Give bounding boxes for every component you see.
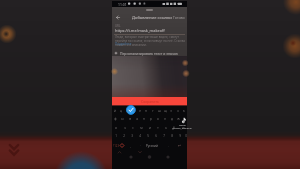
button[interactable]: ц xyxy=(118,108,124,113)
staticText: г xyxy=(152,109,154,113)
button[interactable]: т xyxy=(154,125,162,130)
staticText: 9 xyxy=(179,134,181,138)
staticText: 1 xyxy=(115,134,117,138)
staticText: ф xyxy=(114,117,117,121)
button[interactable]: я xyxy=(112,125,120,130)
button[interactable]: в xyxy=(126,116,133,121)
staticText: п xyxy=(143,117,145,121)
staticText: 8 xyxy=(171,134,173,138)
button[interactable]: ф xyxy=(112,116,119,121)
button[interactable]: 9 xyxy=(176,133,184,138)
button[interactable]: х xyxy=(175,108,181,113)
staticText: и xyxy=(149,126,151,130)
staticText: е xyxy=(139,109,141,113)
button[interactable]: п xyxy=(140,116,147,121)
staticText: у xyxy=(127,109,129,113)
button[interactable]: Готово xyxy=(172,14,186,20)
staticText: й xyxy=(114,109,116,113)
staticText: ш xyxy=(158,109,161,113)
button[interactable]: 6 xyxy=(152,133,160,138)
button[interactable]: у xyxy=(125,108,131,113)
staticText: Подробнее xyxy=(115,42,132,46)
button[interactable]: о xyxy=(154,116,161,121)
staticText: https://t.me/mask_makeoff xyxy=(115,28,165,33)
staticText: Готово xyxy=(173,15,185,20)
button[interactable]: ы xyxy=(119,116,126,121)
staticText: Добавление ссылки xyxy=(132,15,172,21)
button[interactable]: 8 xyxy=(168,133,176,138)
button[interactable]: к xyxy=(131,108,137,113)
staticText: ?123 xyxy=(113,144,120,148)
button[interactable]: м xyxy=(137,125,145,130)
staticText: 4 xyxy=(139,134,141,138)
staticText: щ xyxy=(164,109,167,113)
staticText: ы xyxy=(121,117,124,121)
button[interactable]: з xyxy=(168,108,174,113)
staticText: л xyxy=(164,117,166,121)
button[interactable]: э xyxy=(182,116,187,121)
staticText: TikTok xyxy=(179,124,186,127)
staticText: к xyxy=(133,109,135,113)
button[interactable]: 2 xyxy=(120,133,128,138)
staticText: . xyxy=(168,144,169,148)
staticText: в xyxy=(129,117,131,121)
button[interactable]: й xyxy=(112,108,118,113)
button[interactable]: а xyxy=(133,116,140,121)
staticText: з xyxy=(170,109,172,113)
staticText: 3 xyxy=(131,134,133,138)
button[interactable]: 5 xyxy=(144,133,152,138)
button[interactable]: 7 xyxy=(160,133,168,138)
staticText: н xyxy=(145,109,147,113)
button[interactable]: 0 xyxy=(184,133,187,138)
button[interactable]: д xyxy=(168,116,175,121)
staticText: ю xyxy=(182,126,185,130)
button[interactable]: л xyxy=(161,116,168,121)
staticText: 0 xyxy=(185,134,187,138)
button[interactable]: 4 xyxy=(136,133,144,138)
staticText: · xyxy=(140,144,141,148)
staticText: , xyxy=(130,144,131,148)
button[interactable]: 3 xyxy=(128,133,136,138)
staticText: д xyxy=(171,117,173,121)
button[interactable]: ш xyxy=(156,108,162,113)
button[interactable]: г xyxy=(150,108,156,113)
staticText: 5 xyxy=(147,134,149,138)
button[interactable]: ъ xyxy=(181,108,187,113)
button[interactable]: Персонализировать текст и значок xyxy=(114,50,185,56)
staticText: Сохранить xyxy=(141,99,159,104)
staticText: ↵ xyxy=(178,143,182,147)
button[interactable]: ь xyxy=(162,125,170,130)
button[interactable]: б xyxy=(170,125,178,130)
staticText: ц xyxy=(120,109,122,113)
button[interactable]: щ xyxy=(162,108,168,113)
button[interactable]: Сохранить xyxy=(112,97,187,106)
button[interactable]: ж xyxy=(175,116,182,121)
staticText: э xyxy=(184,117,186,121)
staticText: 11:01 xyxy=(118,2,127,7)
staticText: Русский xyxy=(146,144,158,148)
button[interactable]: ч xyxy=(121,125,129,130)
staticText: а xyxy=(136,117,138,121)
staticText: 2 xyxy=(123,134,125,138)
button[interactable]: е xyxy=(137,108,143,113)
button[interactable]: н xyxy=(143,108,149,113)
staticText: я xyxy=(115,126,117,130)
staticText: 6 xyxy=(155,134,157,138)
staticText: т xyxy=(157,126,159,130)
staticText: ъ xyxy=(183,109,185,113)
staticText: х xyxy=(177,109,179,113)
button[interactable]: ю xyxy=(179,125,187,130)
staticText: ь xyxy=(165,126,167,130)
staticText: Персонализировать текст и значок xyxy=(120,51,178,56)
staticText: б xyxy=(173,126,175,130)
button[interactable]: Назад xyxy=(113,14,123,21)
button[interactable]: и xyxy=(146,125,154,130)
staticText: 7 xyxy=(163,134,165,138)
staticText: @mask_makeoff xyxy=(172,126,192,129)
staticText: URL xyxy=(115,24,121,28)
staticText: ч xyxy=(124,126,126,130)
button[interactable]: 1 xyxy=(112,133,120,138)
button[interactable]: р xyxy=(147,116,154,121)
button[interactable]: с xyxy=(129,125,137,130)
staticText: р xyxy=(150,117,152,121)
